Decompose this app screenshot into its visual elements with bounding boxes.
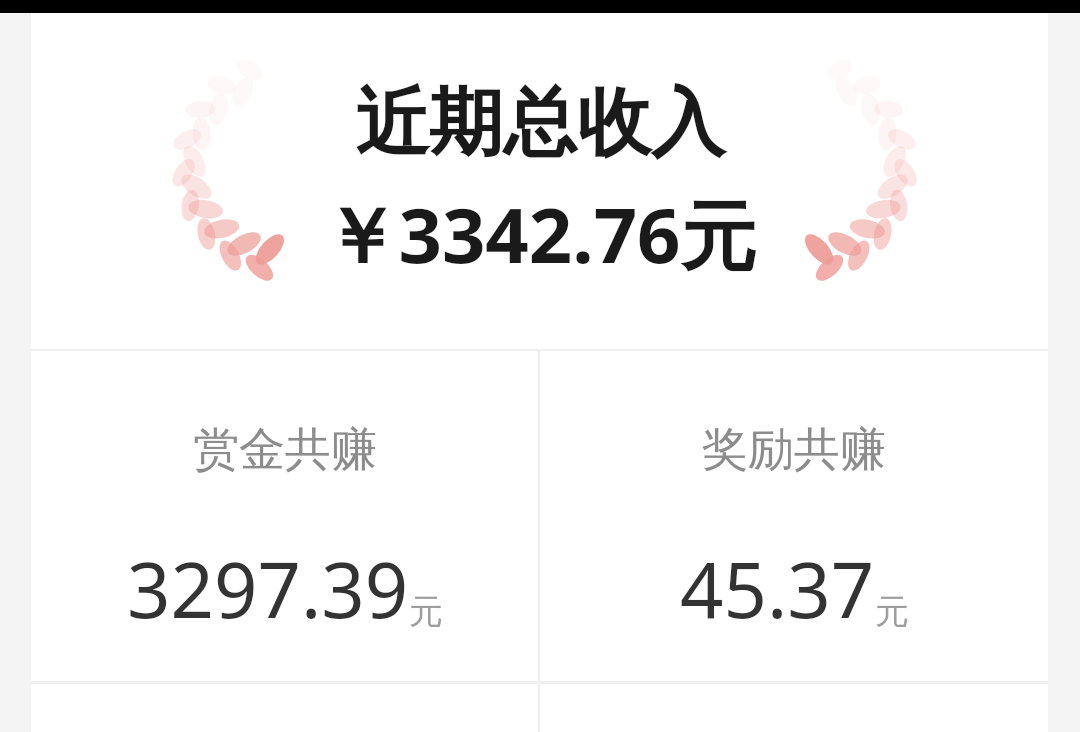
staticText: 近期总收入 (355, 77, 725, 170)
staticText: 元 (875, 590, 909, 633)
staticText: 奖励共赚 (702, 421, 886, 479)
staticText: 元 (409, 590, 443, 633)
staticText: 45.37 (680, 537, 875, 641)
staticText: 3297.39 (127, 537, 409, 641)
other: 月桂装饰 (800, 80, 920, 270)
button[interactable]: 赏金共赚 (31, 351, 538, 641)
staticText: 赏金共赚 (193, 421, 377, 479)
other: 月桂装饰 (169, 80, 289, 270)
button[interactable]: 月桂装饰 (31, 13, 1048, 349)
staticText: ￥3342.76元 (322, 182, 757, 286)
button[interactable]: 奖励共赚 (540, 351, 1048, 641)
